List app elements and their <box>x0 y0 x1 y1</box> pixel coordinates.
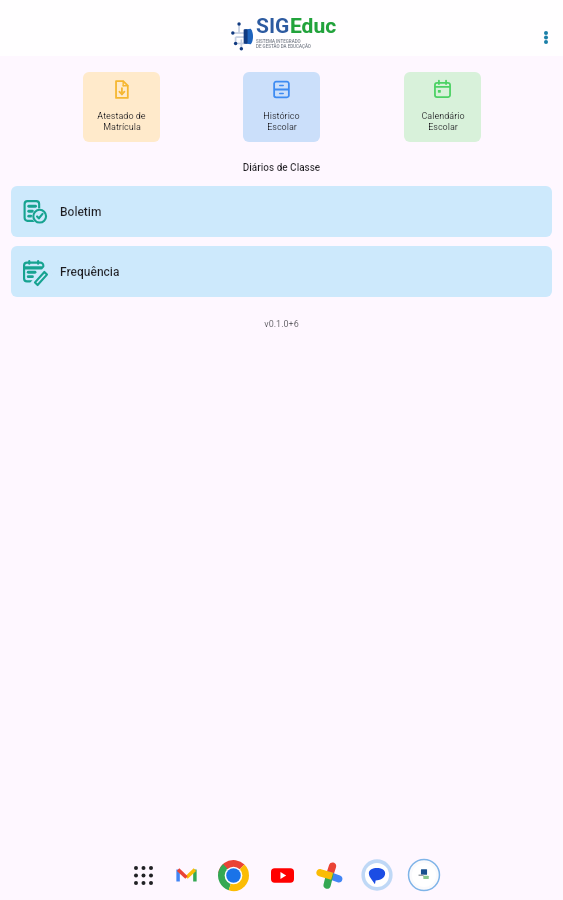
button[interactable]: Apps <box>126 858 160 892</box>
staticText: DE GESTÃO DA EDUCAÇÃO <box>256 44 311 49</box>
staticText: Educ <box>290 14 337 39</box>
staticText: Escolar <box>267 122 297 133</box>
button[interactable]: Chrome <box>216 858 250 892</box>
staticText: Calendário <box>421 111 465 122</box>
staticText: Boletim <box>60 205 102 219</box>
button[interactable]: Boletim <box>11 186 552 237</box>
staticText: Matrícula <box>103 122 141 133</box>
button[interactable]: SIGEduc <box>407 858 441 892</box>
button[interactable]: Photos <box>312 858 346 892</box>
button[interactable]: Messages <box>360 858 394 892</box>
button[interactable]: More options <box>529 20 563 54</box>
staticText: Frequência <box>60 265 120 279</box>
button[interactable]: Histórico <box>243 72 320 142</box>
button[interactable]: Atestado de <box>83 72 160 142</box>
staticText: SIG <box>256 14 290 39</box>
staticText: Diários de Classe <box>0 162 563 174</box>
button[interactable]: YouTube <box>265 858 299 892</box>
button[interactable]: Gmail <box>169 858 203 892</box>
staticText: Escolar <box>428 122 458 133</box>
staticText: v0.1.0+6 <box>0 319 563 330</box>
staticText: SISTEMA INTEGRADO <box>256 39 301 44</box>
button[interactable]: Calendário <box>404 72 481 142</box>
staticText: Histórico <box>263 111 300 122</box>
button[interactable]: Frequência <box>11 246 552 297</box>
staticText: Atestado de <box>97 111 146 122</box>
